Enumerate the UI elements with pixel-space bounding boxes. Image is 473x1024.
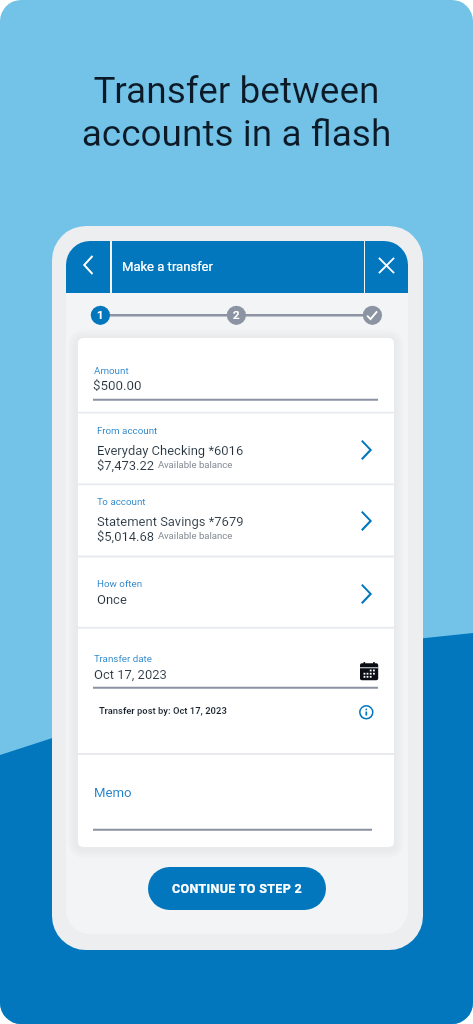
staticText: How often (97, 578, 143, 589)
button[interactable]: Close (365, 241, 408, 293)
staticText: 1 (97, 308, 104, 321)
button[interactable]: Back (66, 241, 110, 293)
button[interactable]: Pick date (360, 662, 378, 680)
staticText: Transfer date (94, 653, 152, 664)
staticText: $500.00 (93, 378, 142, 394)
staticText: Memo (94, 785, 132, 800)
button[interactable]: To account (78, 484, 394, 556)
staticText: Available balance (158, 459, 233, 470)
staticText: Statement Savings *7679 (97, 514, 244, 529)
button[interactable]: How often (78, 557, 394, 628)
staticText: Transfer post by: Oct 17, 2023 (99, 705, 227, 716)
button[interactable]: Transfer date field (78, 628, 394, 690)
button[interactable]: Information (359, 705, 374, 720)
staticText: Everyday Checking *6016 (97, 443, 244, 458)
button[interactable]: Make a transfer (112, 241, 364, 293)
staticText: Amount (94, 365, 129, 376)
button[interactable]: CONTINUE TO STEP 2 (148, 867, 326, 910)
staticText: Make a transfer (122, 259, 213, 274)
staticText: $7,473.22 (97, 458, 155, 473)
staticText: CONTINUE TO STEP 2 (172, 881, 303, 896)
staticText: To account (97, 496, 146, 507)
staticText: Once (97, 592, 127, 607)
button[interactable]: Memo (78, 754, 394, 847)
button[interactable]: Amount (78, 338, 394, 413)
staticText: Transfer between accounts in a flash (0, 69, 473, 155)
staticText: Available balance (158, 530, 233, 541)
staticText: $5,014.68 (97, 529, 155, 544)
staticText: 2 (233, 308, 240, 321)
staticText: Oct 17, 2023 (94, 667, 167, 682)
staticText: From account (97, 425, 158, 436)
button[interactable]: From account (78, 413, 394, 485)
